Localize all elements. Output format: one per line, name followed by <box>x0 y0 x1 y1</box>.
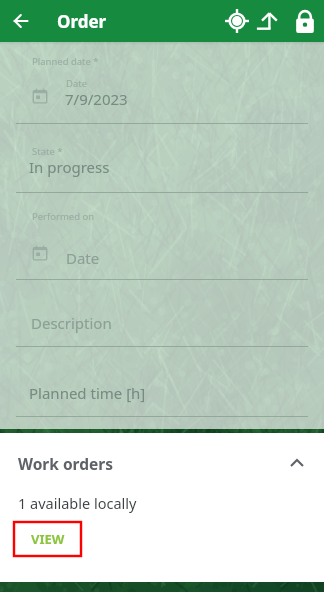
staticText: Date <box>66 248 100 268</box>
button[interactable]: Upload <box>256 5 288 37</box>
staticText: Date <box>66 77 88 90</box>
staticText: 1 available locally <box>18 493 137 513</box>
staticText: Work orders <box>18 453 113 474</box>
staticText: Planned time [h] <box>29 383 146 403</box>
staticText: State * <box>32 145 63 158</box>
button[interactable]: My location <box>218 2 256 40</box>
button[interactable]: VIEW <box>14 522 81 556</box>
staticText: Order <box>57 10 107 33</box>
staticText: Planned date * <box>32 55 99 68</box>
staticText: Description <box>31 313 112 333</box>
staticText: VIEW <box>31 530 65 548</box>
button[interactable]: Lock <box>288 4 322 38</box>
staticText: In progress <box>29 157 110 177</box>
staticText: 7/9/2023 <box>65 89 128 109</box>
button[interactable]: Back <box>0 0 42 42</box>
button[interactable]: Work orders <box>0 445 324 481</box>
staticText: Performed on <box>32 210 95 223</box>
